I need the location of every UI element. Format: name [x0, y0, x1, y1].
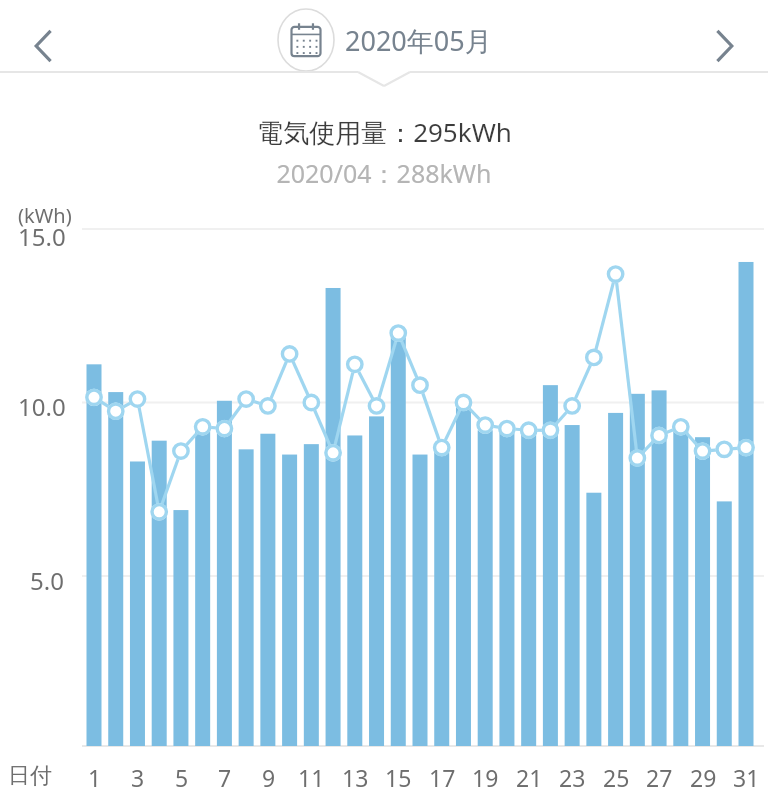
staticText: 11 — [298, 762, 325, 793]
staticText: 5.0 — [30, 564, 64, 597]
staticText: (kWh) — [18, 202, 72, 229]
staticText: 1 — [88, 762, 102, 793]
staticText: 21 — [516, 762, 543, 793]
staticText: 15 — [385, 762, 412, 793]
staticText: 7 — [218, 762, 232, 793]
staticText: 27 — [646, 762, 673, 793]
staticText: 23 — [559, 762, 586, 793]
staticText: 3 — [131, 762, 145, 793]
staticText: 5 — [175, 762, 189, 793]
staticText: 10.0 — [18, 390, 66, 423]
staticText: 17 — [429, 762, 456, 793]
staticText: 9 — [262, 762, 276, 793]
staticText: 日付 — [8, 762, 52, 790]
staticText: 13 — [342, 762, 369, 793]
staticText: 2020年05月 — [345, 22, 492, 59]
staticText: 2020/04：288kWh — [276, 156, 492, 190]
staticText: 31 — [733, 762, 760, 793]
staticText: 15.0 — [18, 220, 66, 253]
staticText: 29 — [690, 762, 717, 793]
button[interactable]: Previous month — [8, 7, 80, 85]
staticText: 25 — [603, 762, 630, 793]
button[interactable]: 2020年05月 — [277, 8, 492, 72]
staticText: 電気使用量：295kWh — [257, 114, 512, 150]
button[interactable]: Next month — [688, 7, 760, 85]
staticText: 19 — [472, 762, 499, 793]
